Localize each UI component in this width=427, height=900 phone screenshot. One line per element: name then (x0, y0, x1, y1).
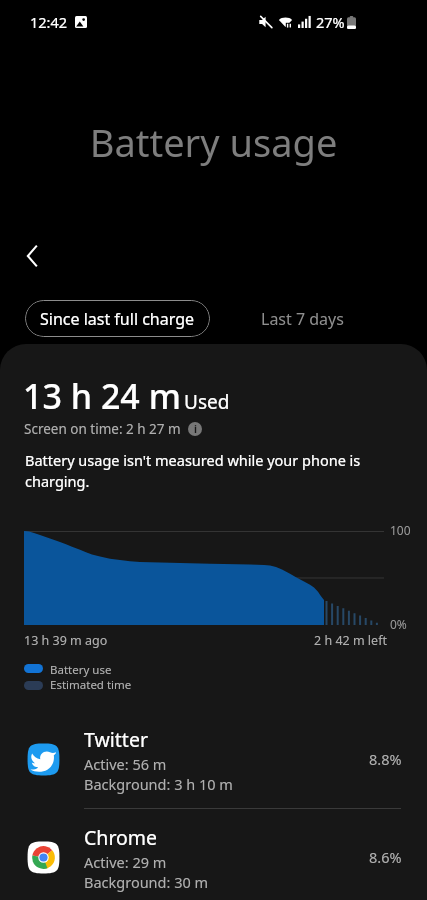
staticText: 27% (316, 12, 345, 32)
staticText: i (194, 422, 197, 436)
staticText: Last 7 days (261, 308, 344, 330)
button[interactable]: Last 7 days (255, 300, 350, 337)
button[interactable]: Twitter (0, 711, 427, 807)
staticText: Estimated time (50, 677, 132, 693)
staticText: 12:42 (30, 12, 68, 32)
staticText: 100 (390, 522, 411, 538)
button[interactable]: Back (8, 232, 56, 280)
staticText: Battery usage isn't measured while your … (25, 450, 361, 492)
staticText: Background: 30 m (84, 872, 209, 892)
staticText: Used (184, 389, 230, 415)
staticText: Active: 56 m (84, 754, 167, 774)
staticText: 0% (390, 616, 407, 632)
staticText: Twitter (84, 726, 148, 753)
staticText: 13 h 39 m ago (24, 632, 108, 649)
staticText: 13 h 24 m (23, 373, 181, 419)
staticText: Background: 3 h 10 m (84, 774, 233, 794)
staticText: 8.6% (369, 847, 402, 867)
staticText: Since last full charge (40, 308, 195, 330)
staticText: 8.8% (369, 749, 402, 769)
button[interactable]: Chrome (0, 809, 427, 900)
staticText: Chrome (84, 824, 158, 851)
staticText: Screen on time: 2 h 27 m (24, 420, 181, 438)
staticText: Battery usage (0, 116, 427, 168)
staticText: Battery use (50, 662, 112, 678)
staticText: Active: 29 m (84, 852, 167, 872)
button[interactable]: More information (188, 422, 202, 436)
staticText: 2 h 42 m left (314, 632, 387, 649)
button[interactable]: Since last full charge (25, 300, 210, 337)
